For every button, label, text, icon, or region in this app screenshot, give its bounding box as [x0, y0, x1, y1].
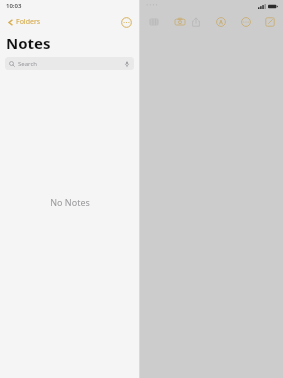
staticText: Folders [16, 17, 41, 27]
button[interactable]: More options [118, 14, 134, 30]
button[interactable]: More [238, 14, 254, 30]
button[interactable]: Compose [263, 14, 277, 30]
staticText: No Notes [50, 196, 90, 208]
button[interactable]: Camera [172, 14, 188, 30]
button[interactable]: Markup [213, 14, 229, 30]
button[interactable]: Table [146, 14, 162, 30]
staticText: 10:03 [6, 2, 22, 10]
button[interactable]: Folders [5, 15, 43, 29]
button[interactable]: Search [5, 57, 134, 70]
staticText: Notes [6, 33, 51, 53]
staticText: Search [18, 60, 37, 68]
button[interactable]: Share [188, 14, 204, 30]
